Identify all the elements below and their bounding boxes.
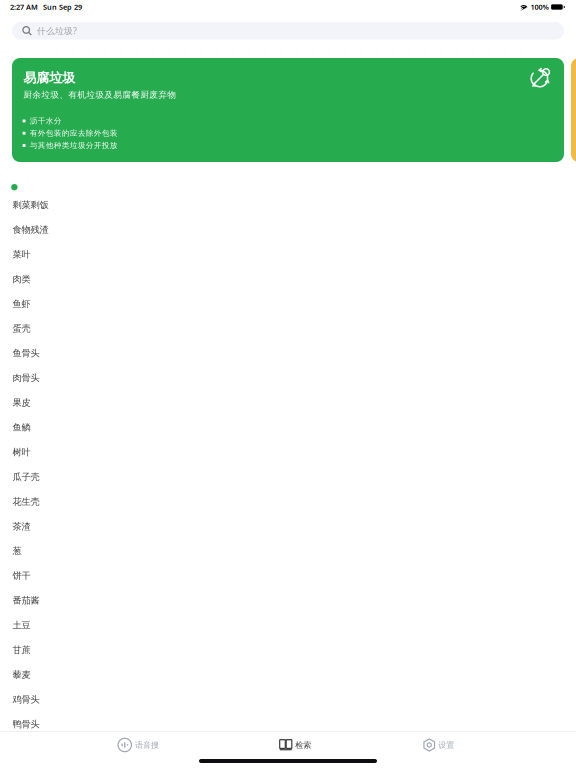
staticText: 菜叶: [12, 249, 30, 260]
staticText: 饼干: [12, 570, 30, 582]
staticText: 沥干水分: [30, 116, 62, 126]
staticText: 茶渣: [12, 520, 30, 532]
button[interactable]: 茶渣: [0, 514, 576, 539]
button[interactable]: 土豆: [0, 613, 576, 637]
button[interactable]: 鱼鳞: [0, 415, 576, 440]
staticText: 与其他种类垃圾分开投放: [30, 141, 118, 150]
staticText: 鱼骨头: [12, 347, 39, 359]
staticText: 什么垃圾?: [37, 25, 77, 37]
button[interactable]: 语音搜: [83, 734, 193, 756]
staticText: 鱼虾: [12, 298, 30, 310]
staticText: 设置: [438, 740, 454, 750]
button[interactable]: 树叶: [0, 440, 576, 464]
staticText: Sun Sep 29: [43, 2, 82, 12]
staticText: 食物残渣: [12, 224, 48, 235]
staticText: 鱼鳞: [12, 422, 30, 433]
button[interactable]: 饼干: [0, 563, 576, 588]
button[interactable]: 检索: [240, 734, 350, 756]
staticText: 2:27 AM: [10, 2, 38, 12]
button[interactable]: 菜叶: [0, 242, 576, 267]
staticText: 剩菜剩饭: [12, 199, 48, 211]
staticText: 树叶: [12, 446, 30, 458]
button[interactable]: 葱: [0, 539, 576, 563]
button[interactable]: 鱼虾: [0, 291, 576, 316]
staticText: 检索: [295, 740, 311, 750]
staticText: 土豆: [12, 619, 30, 631]
button[interactable]: 设置: [384, 734, 494, 756]
button[interactable]: 什么垃圾?: [12, 22, 564, 39]
staticText: 100%: [531, 2, 549, 12]
button[interactable]: 瓜子壳: [0, 464, 576, 489]
staticText: 易腐垃圾: [23, 70, 75, 86]
staticText: 有外包装的应去除外包装: [30, 128, 118, 138]
staticText: 甘蔗: [12, 644, 30, 656]
staticText: 果皮: [12, 397, 30, 408]
button[interactable]: 鸭骨头: [0, 712, 576, 736]
staticText: 瓜子壳: [12, 471, 39, 483]
staticText: 语音搜: [135, 740, 159, 750]
staticText: 鸭骨头: [12, 718, 39, 730]
button[interactable]: 肉类: [0, 267, 576, 291]
button[interactable]: 鸡骨头: [0, 687, 576, 712]
button[interactable]: 肉骨头: [0, 366, 576, 390]
staticText: 花生壳: [12, 496, 39, 507]
button[interactable]: 番茄酱: [0, 588, 576, 613]
button[interactable]: 鱼骨头: [0, 341, 576, 366]
button[interactable]: 藜麦: [0, 662, 576, 687]
button[interactable]: 剩菜剩饭: [0, 193, 576, 217]
staticText: 鸡骨头: [12, 694, 39, 705]
staticText: 肉类: [12, 273, 30, 285]
button[interactable]: 食物残渣: [0, 217, 576, 242]
staticText: 厨余垃圾、有机垃圾及易腐餐厨废弃物: [23, 89, 176, 100]
staticText: 葱: [12, 545, 21, 557]
staticText: 肉骨头: [12, 372, 39, 384]
button[interactable]: 蛋壳: [0, 316, 576, 341]
button[interactable]: 果皮: [0, 390, 576, 415]
staticText: 蛋壳: [12, 323, 30, 334]
staticText: 番茄酱: [12, 595, 39, 606]
staticText: 藜麦: [12, 669, 30, 680]
button[interactable]: 花生壳: [0, 489, 576, 514]
button[interactable]: 甘蔗: [0, 638, 576, 662]
